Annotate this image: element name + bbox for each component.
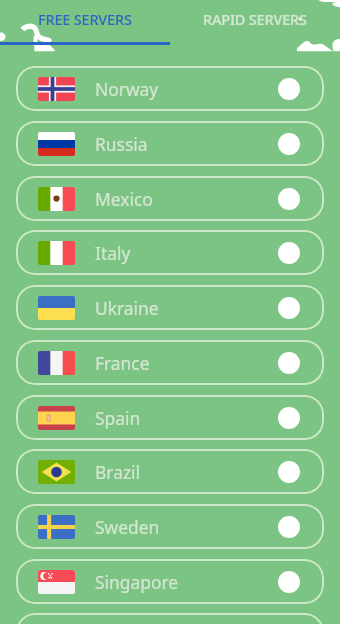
other: Select Singapore [278, 571, 300, 593]
staticText: Norway [95, 77, 159, 101]
button[interactable]: RAPID SERVERS [170, 0, 340, 42]
other: Select Ukraine [278, 297, 300, 319]
staticText: Mexico [95, 187, 153, 211]
other: Select Sweden [278, 516, 300, 538]
button[interactable]: Germany [16, 613, 324, 624]
button[interactable]: France [16, 340, 324, 385]
staticText: Ukraine [95, 296, 159, 320]
staticText: Sweden [95, 515, 160, 539]
button[interactable]: Spain [16, 395, 324, 440]
other: Select Italy [278, 242, 300, 264]
other: Select Russia [278, 133, 300, 155]
staticText: RAPID SERVERS [203, 9, 307, 29]
button[interactable]: FREE SERVERS [0, 0, 170, 42]
staticText: Spain [95, 406, 141, 430]
other: Select Spain [278, 407, 300, 429]
button[interactable]: Mexico [16, 176, 324, 221]
other: Select Brazil [278, 461, 300, 483]
button[interactable]: Norway [16, 66, 324, 111]
button[interactable]: Ukraine [16, 285, 324, 330]
button[interactable]: Russia [16, 121, 324, 166]
staticText: France [95, 351, 150, 375]
staticText: Russia [95, 132, 148, 156]
staticText: Italy [95, 241, 131, 265]
button[interactable]: Singapore [16, 559, 324, 604]
button[interactable]: Sweden [16, 504, 324, 549]
button[interactable]: Brazil [16, 449, 324, 494]
staticText: Singapore [95, 570, 179, 594]
staticText: Brazil [95, 460, 141, 484]
staticText: FREE SERVERS [38, 9, 132, 29]
other: Select France [278, 352, 300, 374]
button[interactable]: Italy [16, 230, 324, 275]
other: Select Mexico [278, 188, 300, 210]
other: Select Norway [278, 78, 300, 100]
